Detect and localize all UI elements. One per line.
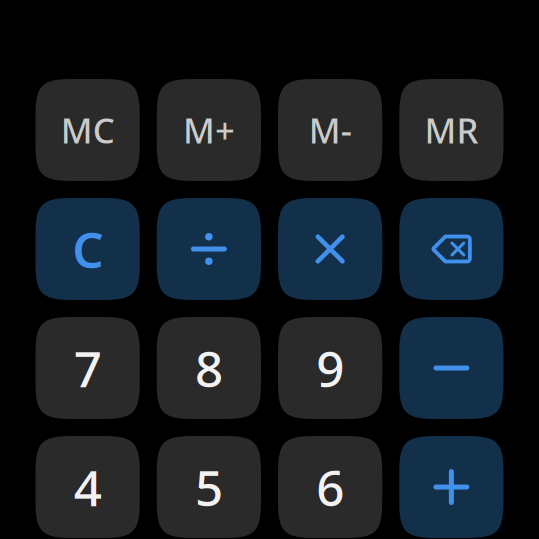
button[interactable]: Plus: [399, 436, 503, 538]
staticText: 9: [316, 335, 344, 401]
button[interactable]: Multiply: [278, 198, 382, 300]
button[interactable]: M-: [278, 79, 382, 181]
staticText: M+: [183, 107, 235, 153]
button[interactable]: 5: [157, 436, 261, 538]
staticText: 5: [195, 454, 223, 520]
staticText: M-: [309, 107, 352, 153]
button[interactable]: 7: [35, 317, 140, 419]
staticText: 6: [316, 454, 344, 520]
staticText: MR: [424, 107, 478, 153]
button[interactable]: 6: [278, 436, 382, 538]
button[interactable]: 9: [278, 317, 382, 419]
button[interactable]: 8: [157, 317, 261, 419]
button[interactable]: Divide: [157, 198, 261, 300]
staticText: 8: [195, 335, 223, 401]
staticText: C: [72, 216, 103, 282]
button[interactable]: Delete: [399, 198, 503, 300]
staticText: 7: [74, 335, 102, 401]
staticText: MC: [61, 107, 115, 153]
staticText: 4: [74, 454, 102, 520]
button[interactable]: M+: [157, 79, 261, 181]
button[interactable]: 4: [35, 436, 140, 538]
button[interactable]: MR: [399, 79, 503, 181]
button[interactable]: C: [35, 198, 140, 300]
button[interactable]: MC: [35, 79, 140, 181]
button[interactable]: Minus: [399, 317, 503, 419]
